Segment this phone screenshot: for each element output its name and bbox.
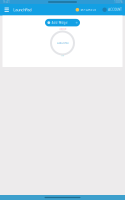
staticText: Add Widget (51, 21, 68, 24)
button[interactable]: LaunchPad (11, 4, 31, 15)
staticText: 0 of 6 (61, 55, 64, 57)
button[interactable]: Menu (2, 4, 11, 15)
staticText: EXPLORE US (80, 8, 95, 11)
staticText: LOADING (56, 41, 68, 45)
button[interactable]: EXPLORE US (74, 4, 97, 15)
staticText: ACCOUNT (108, 8, 121, 11)
staticText: LaunchPad (13, 7, 31, 12)
staticText: Tap to begin (58, 28, 66, 30)
staticText: 9:41 (3, 0, 10, 4)
button[interactable]: ACCOUNT (101, 4, 122, 15)
button[interactable]: Add Widget (45, 19, 80, 26)
staticText: 100% (114, 0, 122, 4)
